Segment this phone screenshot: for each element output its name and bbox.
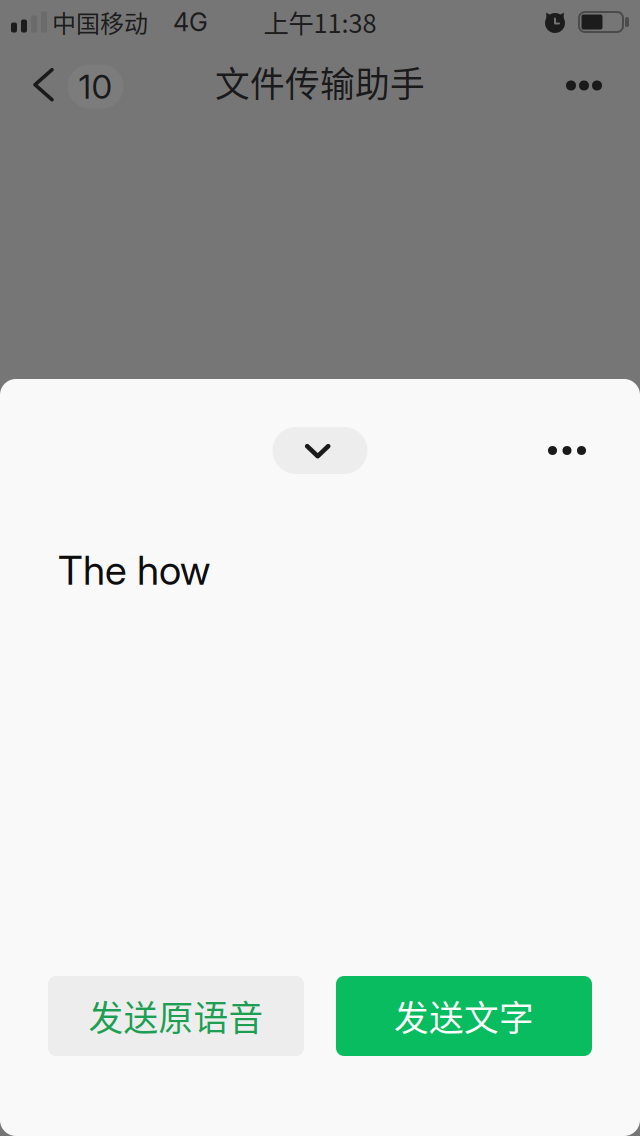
button[interactable]: 发送文字 (336, 976, 592, 1056)
staticText: 上午11:38 (263, 4, 376, 40)
staticText: 发送文字 (394, 991, 534, 1041)
staticText: 中国移动 (52, 5, 148, 39)
button[interactable]: 发送原语音 (48, 976, 304, 1056)
staticText: 文件传输助手 (215, 57, 425, 107)
staticText: 发送原语音 (88, 991, 263, 1041)
button[interactable]: Back (0, 44, 140, 120)
staticText: 4G (173, 7, 208, 37)
button[interactable]: Collapse (272, 427, 367, 474)
button[interactable]: More options (527, 427, 607, 474)
button[interactable]: More (542, 44, 626, 120)
staticText: 10 (79, 66, 113, 107)
staticText: The how (58, 546, 210, 594)
